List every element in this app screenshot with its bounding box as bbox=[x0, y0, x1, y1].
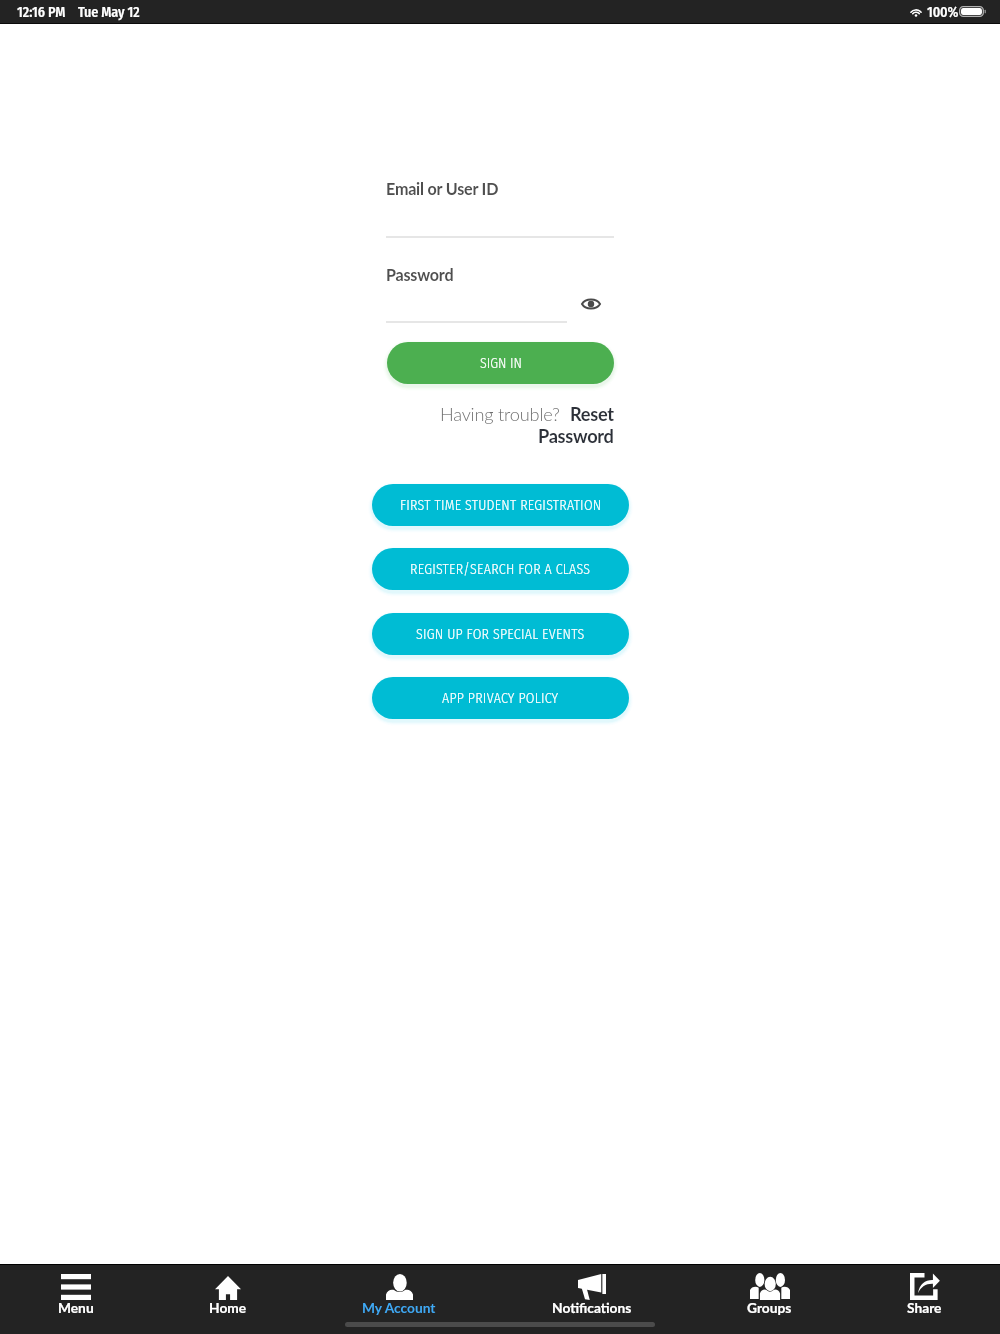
staticText: SIGN IN bbox=[480, 355, 522, 372]
staticText: REGISTER/SEARCH FOR A CLASS bbox=[410, 561, 591, 578]
button[interactable]: Share bbox=[907, 1273, 942, 1317]
button[interactable]: Menu bbox=[58, 1273, 94, 1317]
staticText: APP PRIVACY POLICY bbox=[442, 690, 559, 707]
staticText: Reset bbox=[570, 403, 614, 425]
staticText: 100% bbox=[927, 4, 959, 21]
button[interactable]: APP PRIVACY POLICY bbox=[372, 677, 629, 719]
button[interactable]: My Account bbox=[362, 1273, 436, 1317]
staticText: SIGN UP FOR SPECIAL EVENTS bbox=[416, 626, 585, 643]
staticText: Tue May 12 bbox=[78, 4, 140, 21]
staticText: Password bbox=[538, 425, 614, 447]
button[interactable]: Groups bbox=[747, 1273, 792, 1317]
staticText: Share bbox=[907, 1299, 942, 1316]
staticText: Email or User ID bbox=[386, 179, 499, 198]
button[interactable]: Notifications bbox=[552, 1273, 632, 1317]
button[interactable]: REGISTER/SEARCH FOR A CLASS bbox=[372, 548, 629, 590]
staticText: Password bbox=[386, 265, 454, 284]
button[interactable]: Home bbox=[209, 1273, 247, 1317]
staticText: Having trouble? bbox=[440, 403, 560, 425]
button[interactable]: Having trouble? bbox=[330, 403, 614, 447]
staticText: Menu bbox=[58, 1299, 94, 1316]
button[interactable]: SIGN IN bbox=[387, 342, 614, 384]
button[interactable]: Show password bbox=[576, 289, 605, 318]
staticText: Notifications bbox=[552, 1299, 632, 1316]
staticText: My Account bbox=[362, 1299, 436, 1316]
staticText: FIRST TIME STUDENT REGISTRATION bbox=[400, 497, 602, 514]
button[interactable]: FIRST TIME STUDENT REGISTRATION bbox=[372, 484, 629, 526]
button[interactable]: SIGN UP FOR SPECIAL EVENTS bbox=[372, 613, 629, 655]
staticText: 12:16 PM bbox=[17, 4, 66, 21]
staticText: Groups bbox=[747, 1299, 792, 1316]
staticText: Home bbox=[209, 1299, 247, 1316]
